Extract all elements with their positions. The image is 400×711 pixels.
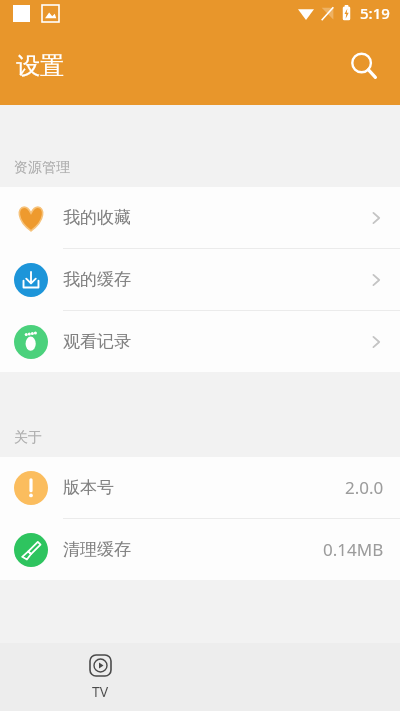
staticText: TV (92, 682, 109, 701)
staticText: 5:19 (360, 3, 390, 23)
staticText: 版本号 (63, 477, 114, 498)
staticText: 观看记录 (63, 331, 131, 352)
staticText: 我的缓存 (63, 269, 131, 290)
staticText: 我的收藏 (63, 207, 131, 228)
button[interactable]: 观看记录 (0, 311, 400, 372)
staticText: 0.14MB (323, 538, 384, 561)
staticText: 设置 (16, 51, 64, 81)
button[interactable]: 版本号 (0, 457, 400, 519)
staticText: 资源管理 (14, 159, 70, 177)
button[interactable]: TV (70, 647, 131, 707)
staticText: 清理缓存 (63, 539, 131, 560)
button[interactable]: 我的收藏 (0, 187, 400, 249)
button[interactable]: 我的缓存 (0, 249, 400, 311)
staticText: 关于 (14, 429, 42, 447)
staticText: 2.0.0 (345, 476, 384, 499)
button[interactable]: 清理缓存 (0, 519, 400, 580)
button[interactable]: Search (340, 42, 388, 90)
